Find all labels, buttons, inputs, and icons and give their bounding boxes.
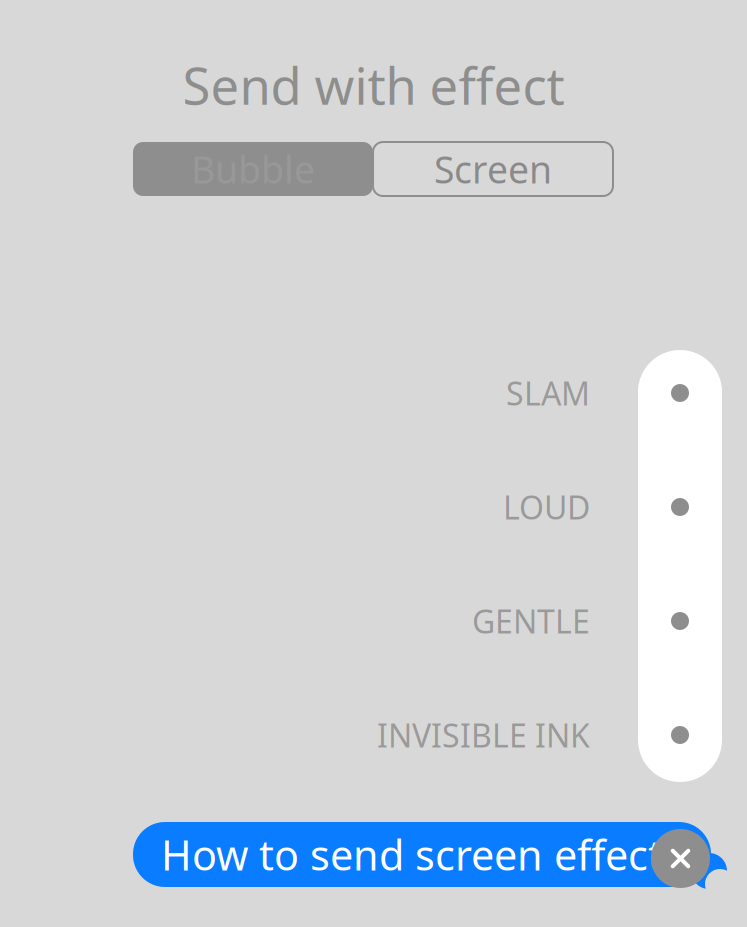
staticText: Send with effect — [182, 51, 564, 119]
staticText: How to send screen effects — [161, 827, 683, 882]
button[interactable]: Close — [651, 829, 710, 888]
staticText: GENTLE — [472, 600, 590, 642]
button[interactable]: GENTLE — [120, 564, 590, 678]
button[interactable]: Screen — [373, 142, 613, 196]
staticText: Screen — [434, 144, 552, 194]
staticText: INVISIBLE INK — [377, 714, 590, 756]
button[interactable]: SLAM — [120, 336, 590, 450]
button[interactable]: INVISIBLE INK — [120, 678, 590, 792]
staticText: Bubble — [191, 144, 315, 194]
button[interactable]: Bubble — [133, 142, 373, 196]
staticText: LOUD — [503, 486, 590, 528]
staticText: SLAM — [506, 372, 590, 414]
button[interactable]: LOUD — [120, 450, 590, 564]
